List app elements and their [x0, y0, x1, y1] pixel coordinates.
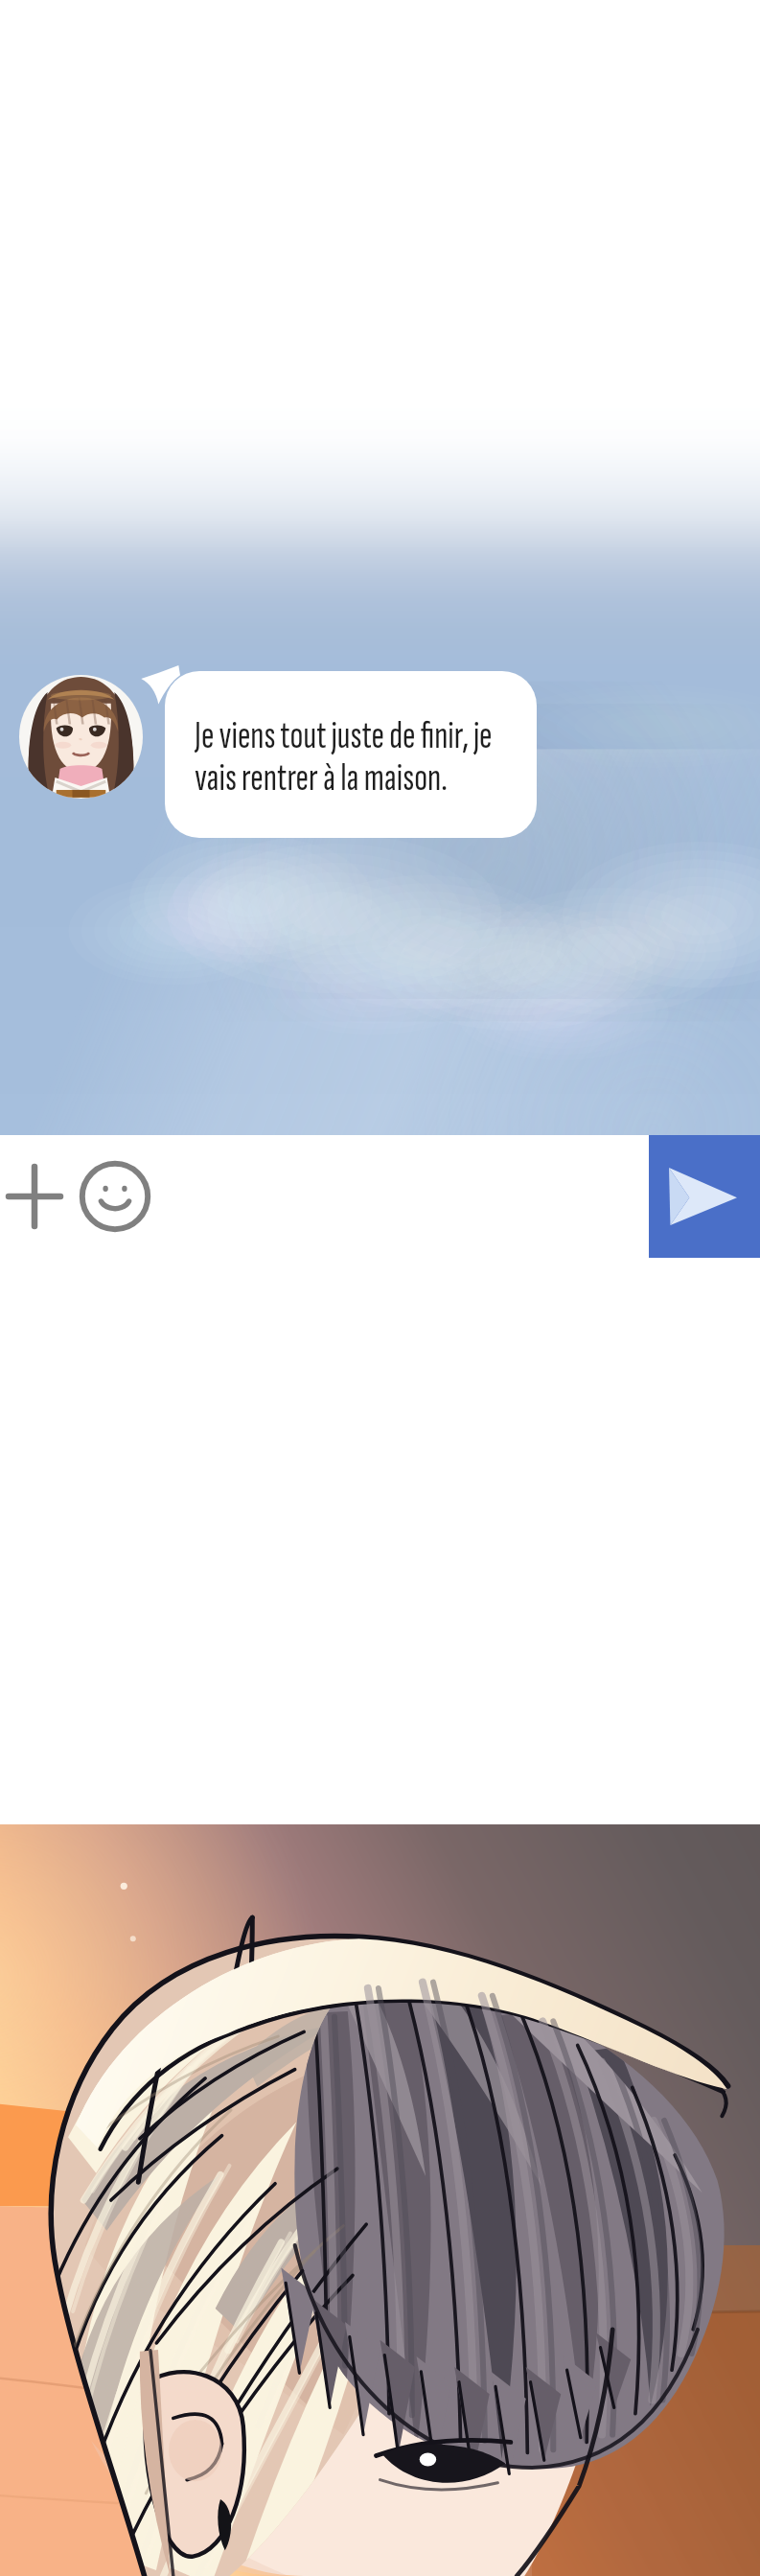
button[interactable]: Je viens tout juste de finir, je vais re… — [165, 671, 537, 838]
staticText: Je viens tout juste de finir, je vais re… — [195, 712, 493, 801]
button[interactable]: Emoji — [67, 1135, 157, 1258]
button[interactable]: Add attachment — [0, 1135, 67, 1258]
button[interactable]: Send — [649, 1135, 760, 1258]
button[interactable]: Profile picture — [19, 675, 143, 799]
